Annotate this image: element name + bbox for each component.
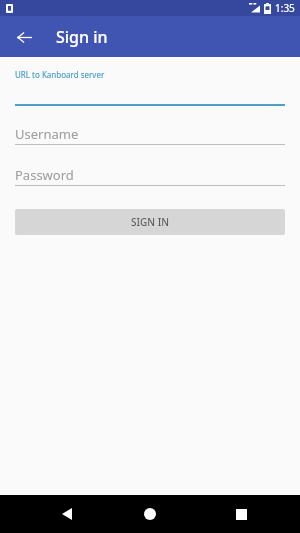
staticText: Sign in: [56, 26, 108, 48]
button[interactable]: Username: [15, 123, 285, 144]
staticText: SIGN IN: [131, 215, 169, 229]
staticText: Username: [15, 125, 79, 143]
staticText: URL to Kanboard server: [15, 69, 105, 80]
staticText: Password: [15, 166, 74, 184]
button[interactable]: Home: [133, 497, 167, 531]
button[interactable]: Password: [15, 164, 285, 185]
button[interactable]: Back: [10, 23, 38, 51]
button[interactable]: URL to Kanboard server: [15, 69, 285, 104]
button[interactable]: SIGN IN: [15, 209, 285, 235]
button[interactable]: Recent apps: [224, 497, 258, 531]
button[interactable]: Back: [50, 497, 84, 531]
staticText: 1:35: [275, 1, 295, 15]
